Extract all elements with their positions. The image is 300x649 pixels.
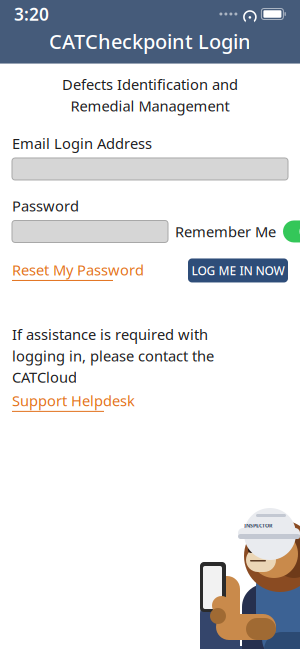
- button[interactable]: Reset My Password: [12, 260, 144, 281]
- button[interactable]: Remember Me: [283, 220, 300, 242]
- staticText: CATCheckpoint Login: [49, 28, 251, 55]
- button[interactable]: Support Helpdesk: [12, 391, 135, 412]
- button[interactable]: Email Login Address: [12, 158, 288, 180]
- staticText: Password: [12, 196, 79, 215]
- staticText: If assistance is required with: [12, 324, 208, 344]
- staticText: Email Login Address: [12, 133, 152, 153]
- staticText: 3:20: [14, 2, 49, 25]
- staticText: CATCloud: [12, 367, 77, 387]
- button[interactable]: Password: [12, 220, 168, 242]
- staticText: Reset My Password: [12, 260, 144, 279]
- staticText: INSPECTOR: [244, 522, 272, 529]
- staticText: Remedial Management: [70, 96, 229, 115]
- staticText: LOG ME IN NOW: [191, 262, 284, 278]
- staticText: Remember Me: [175, 222, 276, 241]
- staticText: logging in, please contact the: [12, 346, 214, 365]
- button[interactable]: LOG ME IN NOW: [188, 258, 288, 282]
- staticText: Defects Identification and: [62, 75, 238, 94]
- staticText: Support Helpdesk: [12, 391, 135, 410]
